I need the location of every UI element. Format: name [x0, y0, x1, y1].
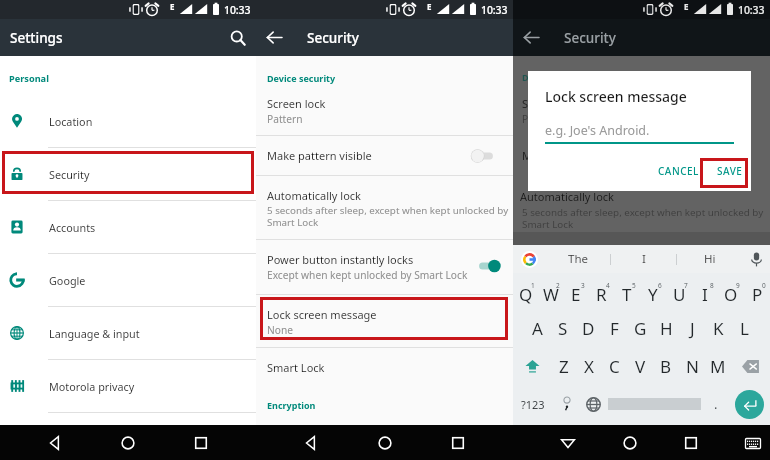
- staticText: H: [660, 317, 673, 340]
- button[interactable]: W: [538, 273, 563, 310]
- staticText: 6: [658, 281, 662, 290]
- staticText: M: [710, 355, 726, 378]
- button[interactable]: SAVE: [714, 160, 746, 182]
- button[interactable]: J: [679, 310, 705, 347]
- button[interactable]: Space: [607, 385, 702, 423]
- button[interactable]: X: [576, 347, 601, 385]
- button[interactable]: O: [718, 273, 744, 310]
- button[interactable]: Location: [0, 95, 256, 147]
- staticText: Smart Lock: [267, 360, 325, 375]
- staticText: F: [610, 317, 619, 340]
- button[interactable]: Navigate up: [513, 19, 550, 56]
- staticText: 3: [581, 281, 585, 290]
- staticText: Encryption: [267, 399, 316, 411]
- button[interactable]: Voice input: [742, 245, 770, 273]
- button[interactable]: Y: [640, 273, 666, 310]
- staticText: Language & input: [49, 326, 140, 341]
- button[interactable]: Backspace: [731, 347, 770, 385]
- staticText: .: [714, 395, 718, 413]
- button[interactable]: Hide keyboard: [737, 427, 769, 459]
- staticText: L: [740, 317, 749, 340]
- staticText: Device security: [267, 72, 336, 84]
- button[interactable]: C: [601, 347, 627, 385]
- staticText: 5 seconds after sleep, except when kept …: [522, 206, 764, 231]
- button[interactable]: F: [601, 310, 627, 347]
- button[interactable]: [471, 149, 496, 163]
- button[interactable]: Recents: [185, 427, 217, 459]
- button[interactable]: B: [653, 347, 679, 385]
- button[interactable]: Navigate up: [256, 19, 293, 56]
- button[interactable]: Language & input: [0, 307, 256, 359]
- staticText: Automatically lock: [267, 188, 361, 203]
- staticText: Lock screen message: [545, 87, 687, 106]
- button[interactable]: The: [545, 245, 610, 273]
- staticText: E: [684, 1, 689, 12]
- button[interactable]: D: [575, 310, 601, 347]
- staticText: 8: [710, 281, 714, 290]
- button[interactable]: N: [679, 347, 705, 385]
- staticText: Google: [49, 273, 86, 288]
- staticText: W: [543, 283, 559, 306]
- button[interactable]: Hi: [677, 245, 742, 273]
- staticText: I: [642, 251, 646, 267]
- button[interactable]: P: [744, 273, 770, 310]
- button[interactable]: [256, 240, 513, 294]
- button[interactable]: K: [705, 310, 731, 347]
- button[interactable]: Recents: [675, 427, 707, 459]
- button[interactable]: Enter: [729, 385, 770, 423]
- button[interactable]: Recents: [442, 427, 474, 459]
- staticText: Security: [49, 167, 90, 182]
- staticText: 10:33: [738, 3, 765, 17]
- button[interactable]: Home: [614, 427, 646, 459]
- button[interactable]: G: [627, 310, 653, 347]
- button[interactable]: T: [614, 273, 640, 310]
- button[interactable]: Q: [513, 273, 538, 310]
- button[interactable]: R: [588, 273, 614, 310]
- button[interactable]: [256, 348, 513, 384]
- button[interactable]: Accounts: [0, 201, 256, 253]
- button[interactable]: E: [563, 273, 588, 310]
- staticText: 2: [556, 281, 560, 290]
- staticText: O: [724, 283, 738, 306]
- button[interactable]: I: [611, 245, 676, 273]
- button[interactable]: [256, 295, 513, 347]
- button[interactable]: Search: [219, 19, 256, 56]
- button[interactable]: U: [666, 273, 692, 310]
- button[interactable]: S: [550, 310, 575, 347]
- button[interactable]: .: [702, 385, 729, 423]
- button[interactable]: H: [653, 310, 679, 347]
- button[interactable]: Change language: [580, 385, 607, 423]
- button[interactable]: Back: [39, 427, 71, 459]
- staticText: Settings: [10, 29, 63, 47]
- staticText: Screen lock: [267, 96, 326, 111]
- staticText: G: [634, 317, 647, 340]
- staticText: A: [532, 317, 543, 340]
- button[interactable]: M: [705, 347, 731, 385]
- button[interactable]: Shift: [513, 347, 551, 385]
- button[interactable]: Google: [0, 254, 256, 306]
- button[interactable]: L: [731, 310, 757, 347]
- button[interactable]: A: [525, 310, 550, 347]
- button[interactable]: ?123: [513, 385, 553, 423]
- button[interactable]: I: [692, 273, 718, 310]
- button[interactable]: Z: [551, 347, 576, 385]
- staticText: 1: [531, 281, 535, 290]
- staticText: SAVE: [717, 164, 743, 178]
- button[interactable]: CANCEL: [657, 160, 699, 182]
- staticText: Accounts: [49, 220, 96, 235]
- button[interactable]: Back: [295, 427, 327, 459]
- staticText: N: [686, 355, 699, 378]
- button[interactable]: Security: [0, 148, 256, 200]
- button[interactable]: Home: [369, 427, 401, 459]
- button[interactable]: V: [627, 347, 653, 385]
- staticText: Personal: [9, 72, 49, 85]
- button[interactable]: [256, 136, 513, 175]
- staticText: V: [635, 355, 646, 378]
- button[interactable]: Motorola privacy: [0, 360, 256, 412]
- button[interactable]: Back: [552, 427, 584, 459]
- button[interactable]: [476, 259, 501, 273]
- button[interactable]: [553, 385, 580, 423]
- button[interactable]: [256, 86, 513, 135]
- button[interactable]: Home: [112, 427, 144, 459]
- button[interactable]: [256, 176, 513, 239]
